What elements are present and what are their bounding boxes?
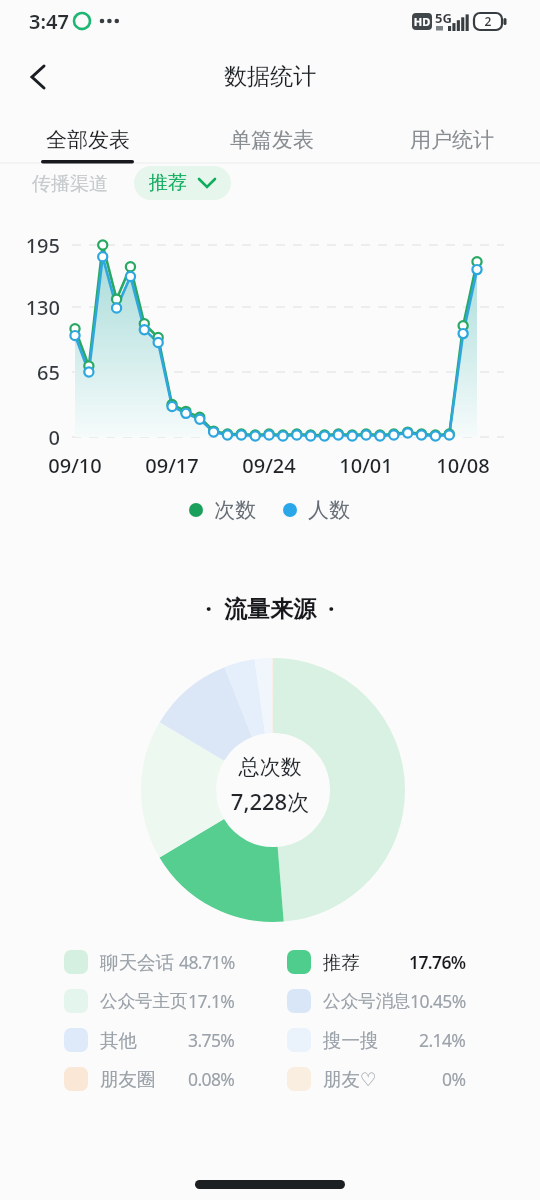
staticText: 单篇发表 (192, 127, 352, 153)
staticText: 10/08 (423, 452, 503, 479)
staticText: 17.76% (409, 950, 466, 974)
staticText: 09/10 (35, 452, 115, 479)
staticText: 其他 (100, 1029, 137, 1052)
staticText: 7,228次 (0, 786, 540, 816)
button[interactable]: 推荐 (287, 945, 466, 979)
staticText: 全部发表 (8, 127, 168, 153)
staticText: 2 (478, 13, 498, 29)
staticText: 0% (442, 1067, 466, 1091)
staticText: · 流量来源 · (0, 592, 540, 623)
staticText: 3:47 (29, 8, 69, 35)
staticText: 推荐 (323, 951, 360, 974)
button[interactable]: 公众号主页 (64, 984, 235, 1018)
staticText: 传播渠道 (32, 172, 108, 196)
staticText: 朋友圈 (100, 1068, 156, 1091)
staticText: 09/17 (132, 452, 212, 479)
button[interactable]: 搜一搜 (287, 1023, 466, 1057)
staticText: 用户统计 (372, 127, 532, 153)
staticText: 数据统计 (0, 62, 540, 91)
button[interactable] (134, 166, 231, 200)
staticText: 65 (14, 359, 60, 386)
staticText: HD (412, 14, 432, 29)
staticText: 聊天会话 (100, 951, 174, 974)
button[interactable] (22, 58, 60, 96)
staticText: 推荐 (149, 171, 187, 195)
staticText: 朋友♡ (323, 1068, 377, 1091)
staticText: 10/01 (326, 452, 406, 479)
staticText: 17.1% (188, 989, 235, 1013)
button[interactable]: 朋友圈 (64, 1062, 235, 1096)
staticText: 48.71% (179, 950, 235, 974)
staticText: 人数 (308, 497, 350, 523)
button[interactable]: 用户统计 (372, 127, 532, 153)
staticText: 10.45% (410, 989, 466, 1013)
button[interactable]: 聊天会话 (64, 945, 235, 979)
button[interactable]: 全部发表 (8, 127, 168, 153)
staticText: 总次数 (0, 754, 540, 780)
button[interactable]: 公众号消息 (287, 984, 466, 1018)
staticText: 09/24 (229, 452, 309, 479)
staticText: 130 (14, 294, 60, 321)
staticText: 次数 (214, 497, 256, 523)
staticText: 2.14% (419, 1028, 466, 1052)
button[interactable]: 其他 (64, 1023, 235, 1057)
staticText: 5G (435, 9, 452, 27)
staticText: 195 (14, 232, 60, 259)
staticText: 搜一搜 (323, 1029, 379, 1052)
staticText: 3.75% (188, 1028, 235, 1052)
button[interactable]: 朋友♡ (287, 1062, 466, 1096)
button[interactable]: 单篇发表 (192, 127, 352, 153)
staticText: 公众号主页 (100, 990, 188, 1012)
staticText: 0 (14, 424, 60, 451)
staticText: 公众号消息 (323, 990, 411, 1012)
staticText: 0.08% (188, 1067, 235, 1091)
